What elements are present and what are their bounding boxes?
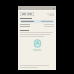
button[interactable]: Back [18, 6, 56, 70]
button[interactable]: More options [52, 7, 55, 10]
button[interactable]: Back [19, 7, 22, 10]
button[interactable]: Official seal [34, 39, 41, 48]
button[interactable] [20, 20, 54, 23]
button[interactable] [20, 12, 34, 16]
